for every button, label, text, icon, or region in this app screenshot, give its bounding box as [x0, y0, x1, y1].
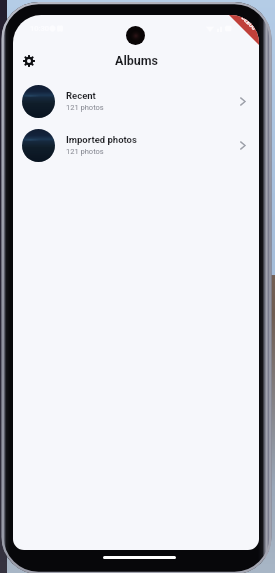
- staticText: Recent: [66, 90, 96, 101]
- staticText: Albums: [115, 53, 158, 68]
- staticText: Imported photos: [66, 134, 137, 145]
- button[interactable]: Recent: [13, 79, 259, 123]
- staticText: 121 photos: [66, 103, 104, 112]
- staticText: DEBUG: [240, 15, 257, 31]
- button[interactable]: Settings: [18, 50, 40, 72]
- staticText: 121 photos: [66, 147, 104, 156]
- button[interactable]: Imported photos: [13, 123, 259, 167]
